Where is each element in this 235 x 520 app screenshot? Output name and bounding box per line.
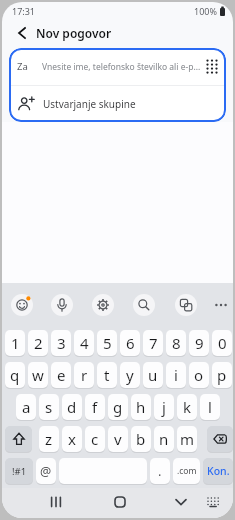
button[interactable]: 2 bbox=[28, 330, 48, 356]
button[interactable]: x bbox=[62, 426, 82, 452]
button[interactable] bbox=[207, 426, 233, 452]
staticText: o bbox=[194, 365, 204, 385]
staticText: Vnesite ime, telefonsko številko ali e-p… bbox=[42, 61, 201, 73]
staticText: y bbox=[126, 365, 134, 385]
button[interactable]: r bbox=[74, 362, 94, 388]
staticText: d bbox=[67, 397, 77, 417]
staticText: 100% bbox=[194, 5, 217, 17]
staticText: 4 bbox=[80, 333, 89, 353]
staticText: 7 bbox=[149, 333, 158, 353]
button[interactable]: 1 bbox=[5, 330, 25, 356]
button[interactable]: 3 bbox=[51, 330, 71, 356]
button[interactable]: k bbox=[177, 394, 197, 420]
staticText: f bbox=[92, 397, 98, 417]
button[interactable]: 6 bbox=[120, 330, 140, 356]
staticText: 6 bbox=[126, 333, 135, 353]
button[interactable] bbox=[2, 283, 233, 330]
button[interactable]: j bbox=[154, 394, 174, 420]
button[interactable]: b bbox=[131, 426, 151, 452]
button[interactable]: 7 bbox=[143, 330, 163, 356]
button[interactable]: g bbox=[108, 394, 128, 420]
button[interactable] bbox=[13, 24, 31, 42]
button[interactable]: 5 bbox=[97, 330, 117, 356]
staticText: .com bbox=[177, 465, 197, 477]
staticText: Nov pogovor bbox=[36, 25, 112, 41]
staticText: m bbox=[180, 429, 195, 449]
staticText: 8 bbox=[172, 333, 181, 353]
staticText: n bbox=[159, 429, 169, 449]
staticText: l bbox=[208, 397, 212, 417]
button[interactable]: o bbox=[189, 362, 209, 388]
staticText: 0 bbox=[218, 333, 227, 353]
button[interactable]: a bbox=[16, 394, 36, 420]
staticText: j bbox=[162, 397, 166, 417]
staticText: Kon. bbox=[207, 464, 230, 478]
staticText: !#1 bbox=[12, 465, 27, 478]
button[interactable]: 0 bbox=[212, 330, 232, 356]
button[interactable]: Kon. bbox=[203, 458, 233, 484]
staticText: Ustvarjanje skupine bbox=[43, 97, 136, 111]
button[interactable]: h bbox=[131, 394, 151, 420]
staticText: @ bbox=[40, 463, 52, 480]
staticText: c bbox=[91, 429, 99, 449]
staticText: e bbox=[57, 365, 66, 385]
button[interactable]: l bbox=[200, 394, 220, 420]
button[interactable]: s bbox=[39, 394, 59, 420]
button[interactable]: i bbox=[166, 362, 186, 388]
button[interactable]: q bbox=[5, 362, 25, 388]
button[interactable]: 4 bbox=[74, 330, 94, 356]
staticText: q bbox=[10, 365, 20, 385]
staticText: r bbox=[81, 365, 88, 385]
button[interactable]: !#1 bbox=[5, 458, 33, 484]
staticText: t bbox=[104, 365, 110, 385]
button[interactable]: f bbox=[85, 394, 105, 420]
staticText: g bbox=[113, 397, 123, 417]
button[interactable] bbox=[206, 59, 218, 74]
staticText: z bbox=[45, 429, 53, 449]
button[interactable]: v bbox=[108, 426, 128, 452]
button[interactable]: 9 bbox=[189, 330, 209, 356]
button[interactable]: .com bbox=[173, 458, 200, 484]
button[interactable]: z bbox=[39, 426, 59, 452]
button[interactable]: t bbox=[97, 362, 117, 388]
button[interactable]: . bbox=[150, 458, 170, 484]
staticText: a bbox=[22, 397, 31, 417]
staticText: u bbox=[148, 365, 158, 385]
button[interactable]: c bbox=[85, 426, 105, 452]
staticText: b bbox=[136, 429, 146, 449]
staticText: 5 bbox=[103, 333, 112, 353]
button[interactable]: n bbox=[154, 426, 174, 452]
staticText: 3 bbox=[57, 333, 66, 353]
staticText: w bbox=[32, 365, 44, 385]
staticText: s bbox=[45, 397, 53, 417]
button[interactable]: u bbox=[143, 362, 163, 388]
button[interactable]: Ustvarjanje skupine bbox=[9, 86, 226, 122]
staticText: i bbox=[174, 365, 178, 385]
button[interactable]: Za bbox=[9, 48, 226, 85]
button[interactable] bbox=[2, 488, 233, 518]
staticText: k bbox=[183, 397, 192, 417]
button[interactable]: 8 bbox=[166, 330, 186, 356]
button[interactable]: w bbox=[28, 362, 48, 388]
staticText: 17:31 bbox=[12, 5, 36, 17]
staticText: v bbox=[114, 429, 122, 449]
button[interactable]: e bbox=[51, 362, 71, 388]
staticText: 1 bbox=[11, 333, 20, 353]
staticText: p bbox=[217, 365, 227, 385]
staticText: h bbox=[136, 397, 146, 417]
button[interactable]: p bbox=[212, 362, 232, 388]
staticText: . bbox=[158, 462, 162, 480]
button[interactable]: d bbox=[62, 394, 82, 420]
staticText: 9 bbox=[195, 333, 204, 353]
button[interactable]: @ bbox=[36, 458, 56, 484]
staticText: 2 bbox=[34, 333, 43, 353]
staticText: Za bbox=[17, 60, 28, 73]
button[interactable] bbox=[5, 426, 32, 452]
button[interactable]: m bbox=[177, 426, 197, 452]
staticText: x bbox=[68, 429, 76, 449]
button[interactable]: y bbox=[120, 362, 140, 388]
